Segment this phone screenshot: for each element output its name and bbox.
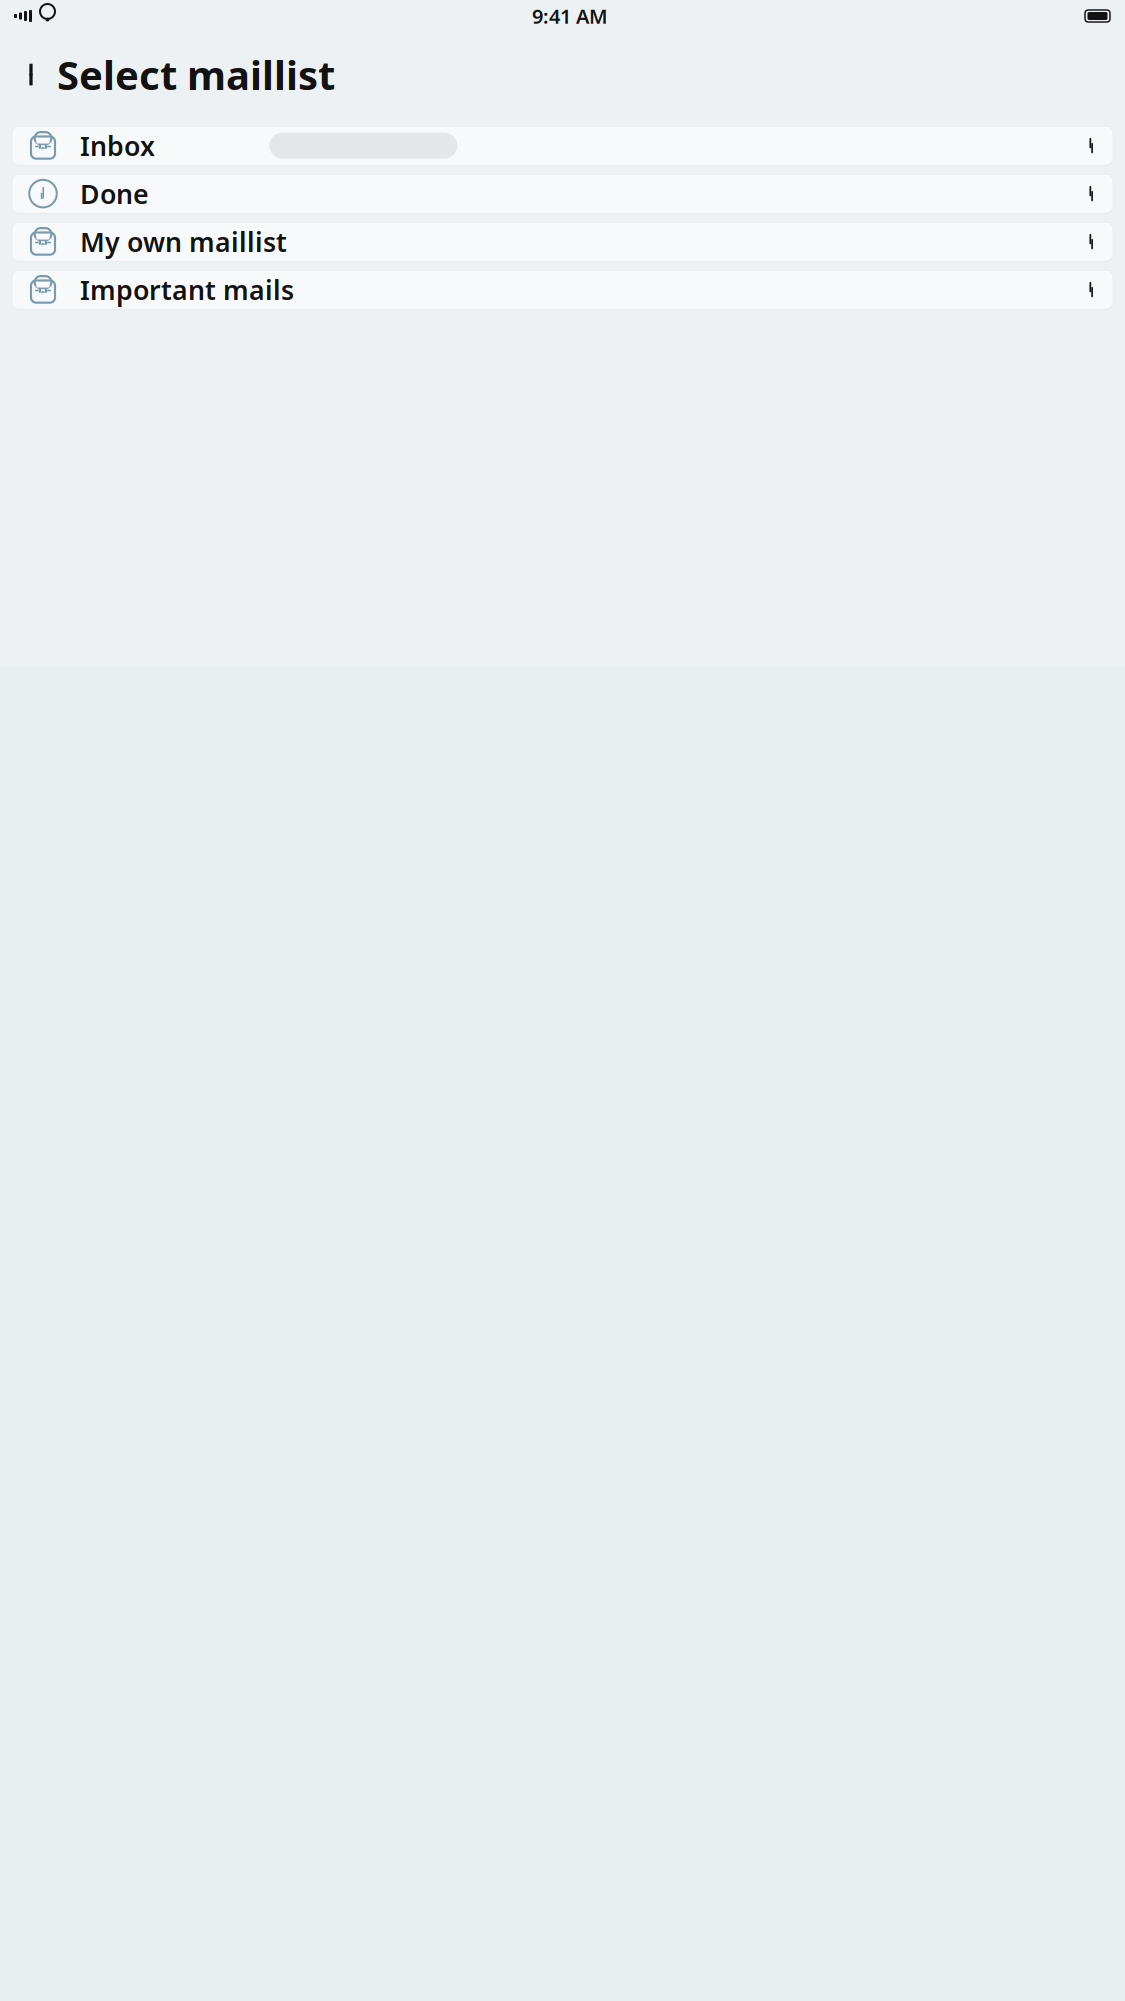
button[interactable]: Close	[11, 55, 51, 95]
button[interactable]: Done	[12, 174, 1113, 213]
button[interactable]: My own maillist	[12, 222, 1113, 261]
button[interactable]: Important mails	[12, 270, 1113, 309]
staticText: Done	[80, 176, 149, 211]
staticText: Important mails	[80, 272, 294, 307]
staticText: 9:41 AM	[532, 3, 608, 29]
staticText: My own maillist	[80, 224, 287, 259]
staticText: Inbox	[80, 128, 155, 163]
button[interactable]: Inbox	[12, 126, 1113, 165]
staticText: Select maillist	[57, 48, 335, 101]
